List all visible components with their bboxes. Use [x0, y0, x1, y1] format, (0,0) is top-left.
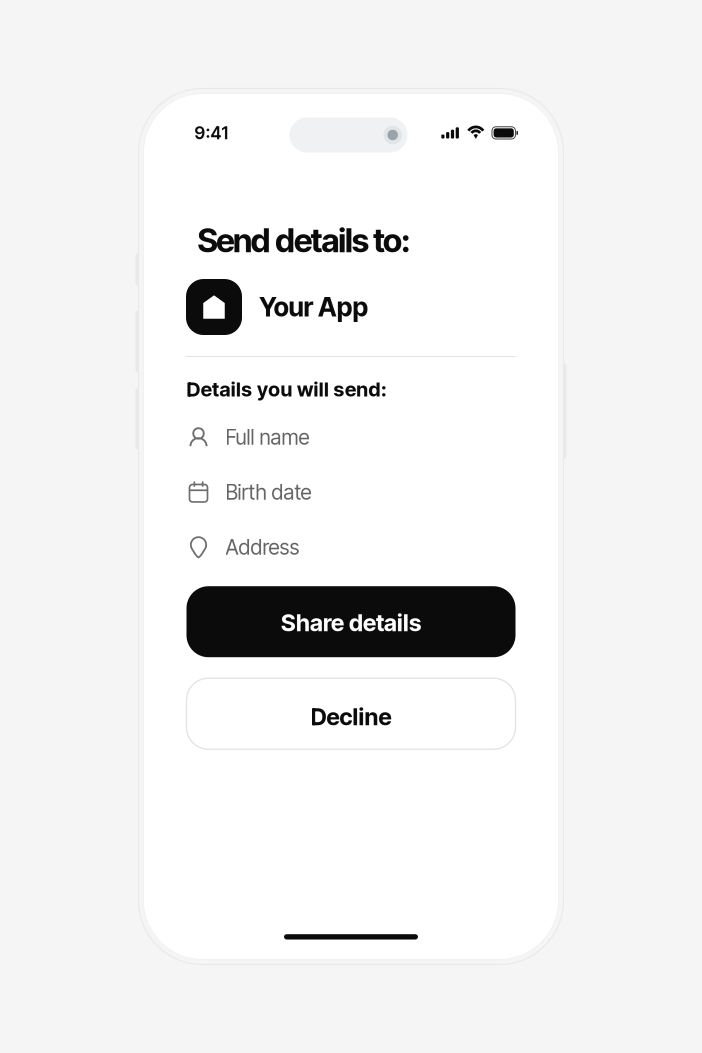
staticText: Birth date [225, 480, 311, 505]
button[interactable]: Decline [186, 678, 515, 749]
staticText: Share details [281, 609, 421, 637]
staticText: Details you will send: [186, 377, 387, 401]
button[interactable]: Share details [186, 586, 515, 657]
staticText: Send details to: [197, 220, 411, 260]
staticText: Decline [310, 703, 391, 731]
staticText: Full name [225, 425, 309, 450]
staticText: Your App [259, 291, 369, 323]
staticText: Address [225, 535, 299, 560]
staticText: 9:41 [194, 122, 228, 143]
